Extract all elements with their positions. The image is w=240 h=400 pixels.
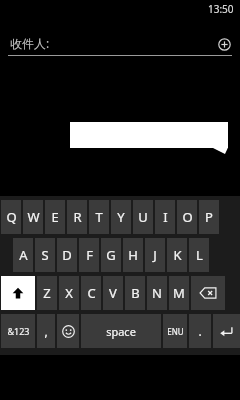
button[interactable]: D: [57, 238, 77, 272]
button[interactable]: R: [67, 200, 87, 234]
button[interactable]: G: [101, 238, 121, 272]
button[interactable]: F: [79, 238, 99, 272]
staticText: ENU: [167, 326, 184, 337]
staticText: T: [95, 208, 103, 226]
button[interactable]: O: [177, 200, 197, 234]
button[interactable]: Shift: [1, 276, 35, 310]
staticText: F: [86, 246, 93, 264]
staticText: J: [153, 246, 157, 264]
button[interactable]: Enter: [213, 314, 240, 348]
staticText: L: [196, 246, 203, 264]
staticText: W: [27, 208, 40, 226]
staticText: U: [138, 208, 148, 226]
staticText: V: [109, 284, 117, 302]
staticText: N: [152, 284, 162, 302]
button[interactable]: T: [89, 200, 109, 234]
button[interactable]: P: [199, 200, 219, 234]
staticText: O: [182, 208, 193, 226]
button[interactable]: &123: [1, 314, 35, 348]
button[interactable]: 收件人:: [0, 30, 240, 56]
button[interactable]: Y: [111, 200, 131, 234]
button[interactable]: Add recipient: [214, 34, 234, 54]
button[interactable]: H: [123, 238, 143, 272]
staticText: S: [41, 246, 49, 264]
button[interactable]: V: [103, 276, 123, 310]
button[interactable]: N: [147, 276, 167, 310]
button[interactable]: .: [189, 314, 211, 348]
button[interactable]: Emoji: [57, 314, 79, 348]
button[interactable]: B: [125, 276, 145, 310]
staticText: C: [87, 284, 96, 302]
staticText: ,: [44, 323, 48, 339]
staticText: &123: [7, 325, 30, 337]
staticText: .: [198, 323, 202, 339]
staticText: space: [106, 324, 136, 339]
staticText: K: [173, 246, 182, 264]
button[interactable]: X: [59, 276, 79, 310]
button[interactable]: [70, 122, 228, 154]
button[interactable]: C: [81, 276, 101, 310]
button[interactable]: I: [155, 200, 175, 234]
staticText: D: [62, 246, 72, 264]
button[interactable]: space: [81, 314, 161, 348]
button[interactable]: A: [13, 238, 33, 272]
button[interactable]: ENU: [163, 314, 187, 348]
button[interactable]: W: [23, 200, 43, 234]
staticText: A: [19, 246, 28, 264]
button[interactable]: S: [35, 238, 55, 272]
staticText: Z: [43, 284, 51, 302]
staticText: M: [173, 284, 185, 302]
button[interactable]: J: [145, 238, 165, 272]
staticText: 13:50: [208, 2, 234, 16]
button[interactable]: E: [45, 200, 65, 234]
button[interactable]: U: [133, 200, 153, 234]
staticText: Q: [6, 208, 17, 226]
staticText: H: [128, 246, 138, 264]
staticText: Y: [117, 208, 125, 226]
button[interactable]: ,: [37, 314, 55, 348]
button[interactable]: M: [169, 276, 189, 310]
staticText: B: [131, 284, 140, 302]
button[interactable]: Backspace: [191, 276, 225, 310]
button[interactable]: K: [167, 238, 187, 272]
button[interactable]: L: [189, 238, 209, 272]
staticText: 收件人:: [10, 35, 50, 51]
staticText: R: [73, 208, 82, 226]
button[interactable]: Z: [37, 276, 57, 310]
staticText: X: [65, 284, 73, 302]
staticText: E: [51, 208, 59, 226]
button[interactable]: Q: [1, 200, 21, 234]
staticText: P: [205, 208, 213, 226]
staticText: G: [106, 246, 116, 264]
staticText: I: [163, 208, 168, 226]
